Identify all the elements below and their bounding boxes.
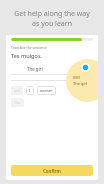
- staticText: I: [29, 88, 31, 93]
- staticText: woman: [40, 88, 53, 93]
- button[interactable]: I: [26, 86, 34, 95]
- staticText: HINT: [73, 76, 81, 80]
- staticText: Get help along the way as you learn: [5, 9, 99, 29]
- button[interactable]: The: [11, 98, 24, 107]
- staticText: The: [14, 100, 21, 105]
- staticText: Translate the sentence: [11, 45, 47, 50]
- button[interactable]: girl: [11, 86, 23, 95]
- staticText: Confirm: [43, 168, 61, 174]
- button[interactable]: Confirm: [11, 165, 93, 176]
- staticText: The girl: [73, 81, 88, 86]
- staticText: girl: [14, 88, 20, 93]
- button[interactable]: Hint: [66, 59, 98, 102]
- button[interactable]: woman: [37, 86, 56, 95]
- staticText: The girl: [27, 66, 43, 72]
- staticText: Tes mulgos.: [11, 52, 43, 59]
